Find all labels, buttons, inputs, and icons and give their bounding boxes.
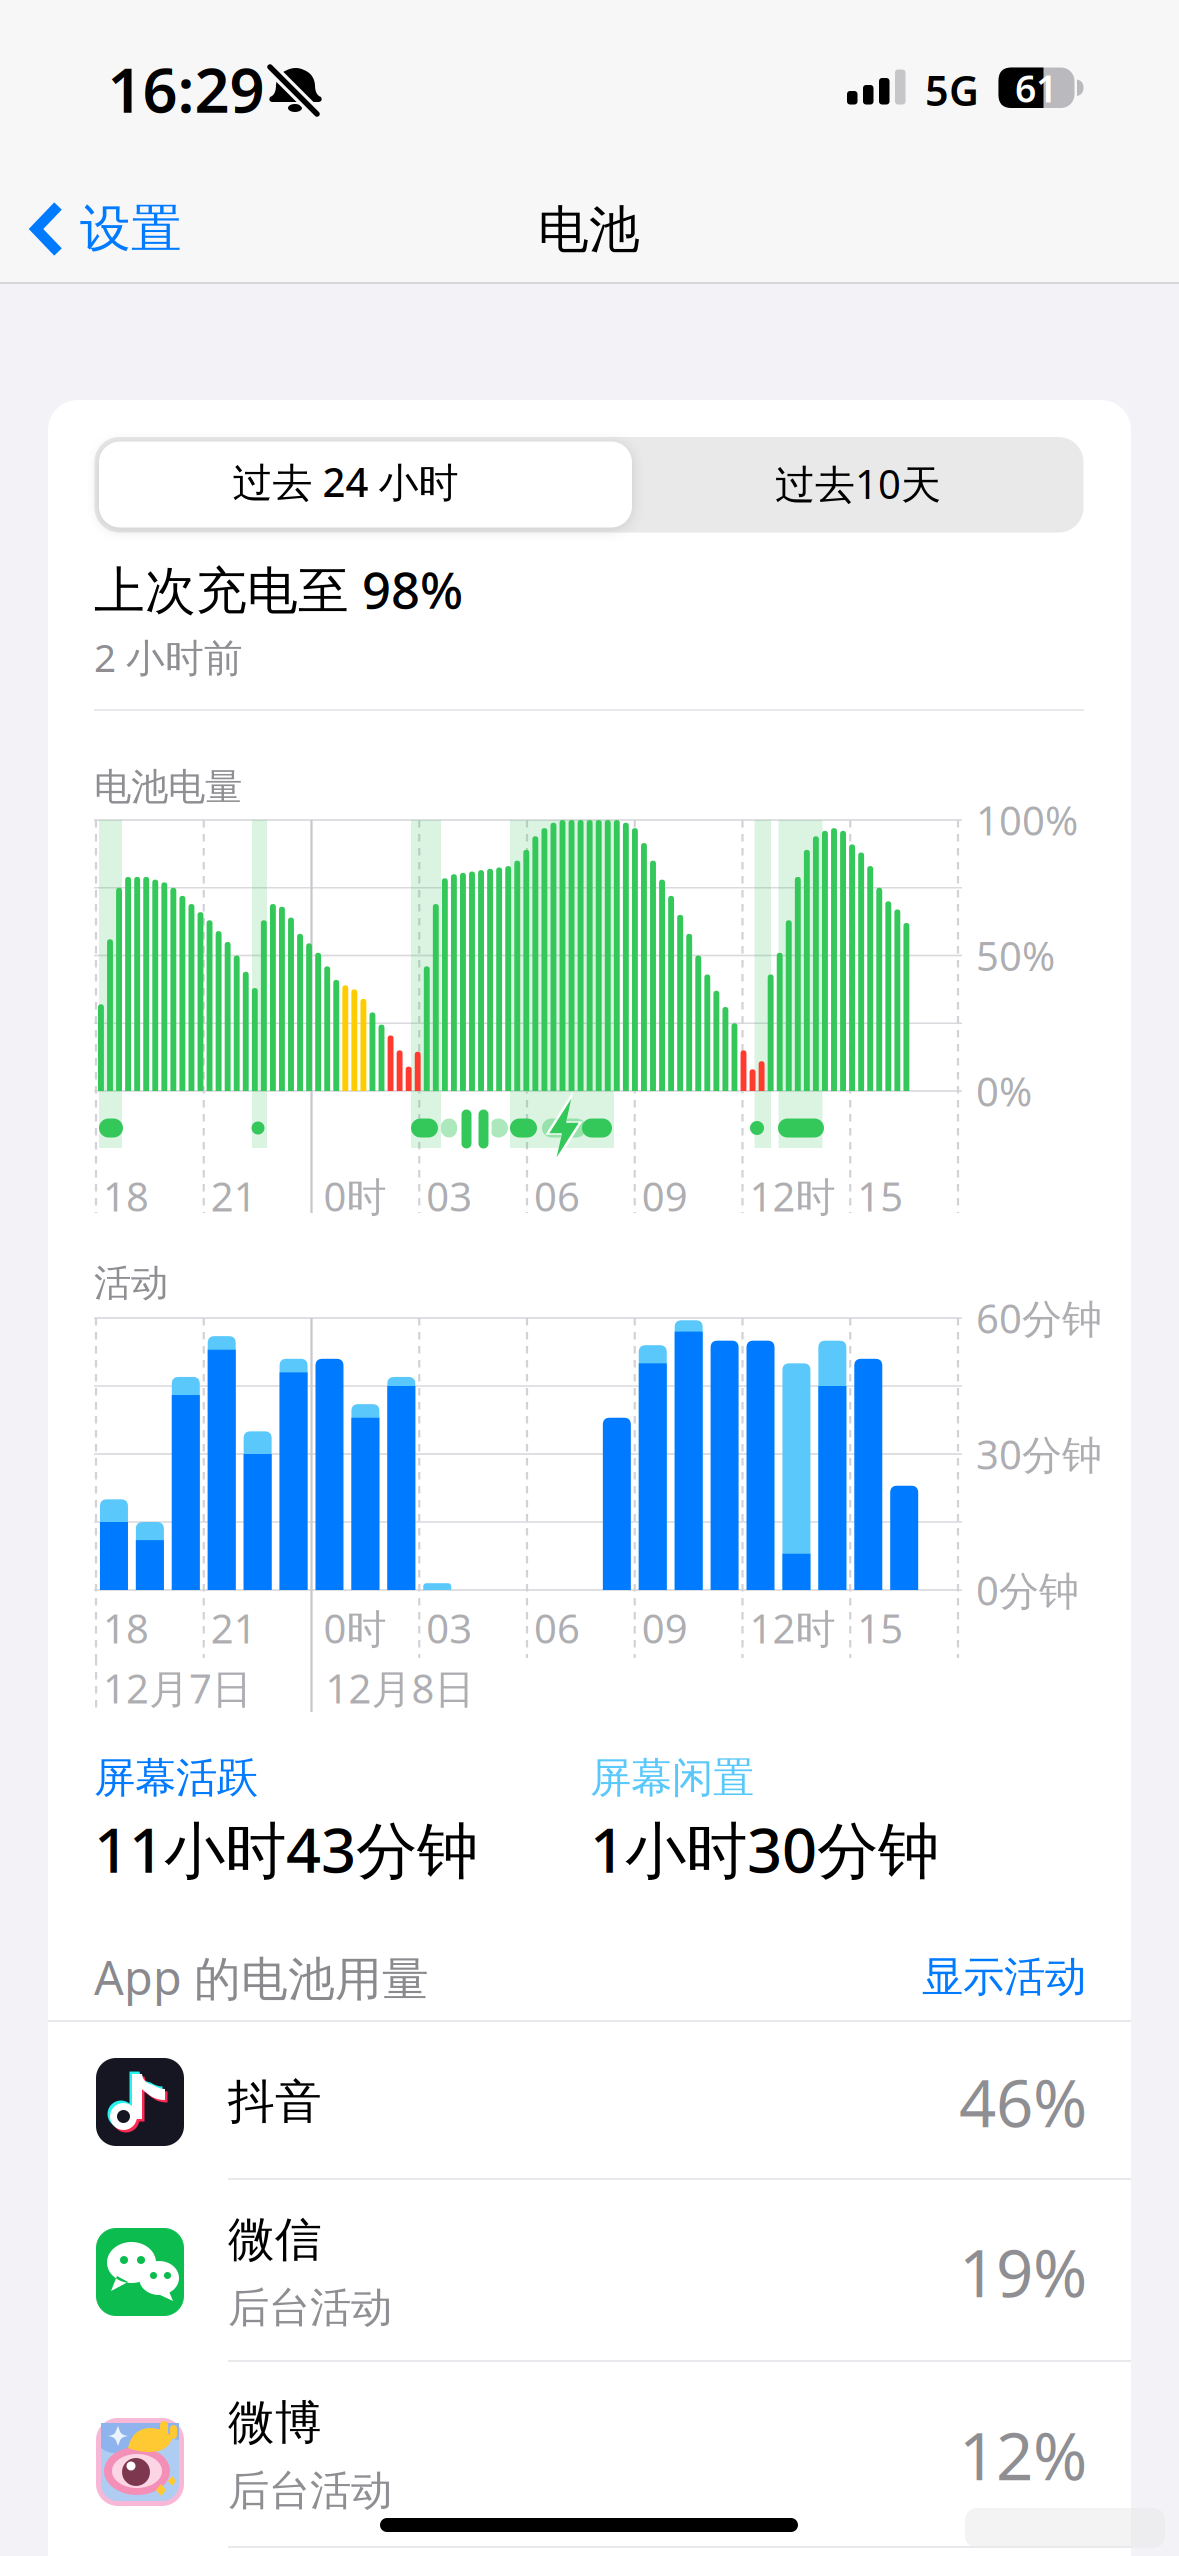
staticText: 5G xyxy=(925,63,979,117)
staticText: 屏幕闲置 xyxy=(590,1753,754,1803)
staticText: 微信 xyxy=(228,2211,322,2268)
staticText: 03 xyxy=(426,1601,472,1654)
staticText: 微博 xyxy=(228,2394,322,2451)
button[interactable]: 显示活动 xyxy=(766,1932,1086,2022)
staticText: 后台活动 xyxy=(228,2282,392,2333)
staticText: 15 xyxy=(857,1601,903,1654)
staticText: 0% xyxy=(976,1064,1032,1117)
staticText: 06 xyxy=(534,1169,580,1222)
button[interactable]: 微博 xyxy=(48,2364,1131,2546)
staticText: 06 xyxy=(534,1601,580,1654)
staticText: 2 小时前 xyxy=(94,631,243,683)
staticText: 抖音 xyxy=(228,2073,322,2131)
staticText: 61 xyxy=(1015,63,1057,113)
staticText: 显示活动 xyxy=(922,1952,1086,2002)
staticText: 12月7日 xyxy=(103,1661,252,1714)
staticText: 0时 xyxy=(323,1601,386,1654)
staticText: 0时 xyxy=(323,1169,386,1222)
button[interactable]: 过去 24 小时 xyxy=(99,441,632,527)
button[interactable]: 过去10天 xyxy=(633,440,1083,526)
staticText: 电池 xyxy=(538,199,640,261)
staticText: 21 xyxy=(211,1601,257,1654)
staticText: 后台活动 xyxy=(228,2465,392,2516)
button[interactable]: 微信 xyxy=(48,2181,1131,2363)
staticText: 15 xyxy=(857,1169,903,1222)
staticText: 12% xyxy=(959,2412,1087,2498)
staticText: 21 xyxy=(211,1169,257,1222)
staticText: App 的电池用量 xyxy=(94,1946,429,2008)
staticText: 18 xyxy=(103,1169,149,1222)
staticText: 12时 xyxy=(749,1601,835,1654)
button[interactable]: 返回设置 xyxy=(30,198,182,260)
staticText: 46% xyxy=(959,2059,1087,2145)
staticText: 100% xyxy=(976,793,1078,846)
staticText: 过去10天 xyxy=(775,457,941,510)
staticText: 30分钟 xyxy=(976,1427,1102,1480)
button[interactable]: 抖音 xyxy=(48,2024,1131,2180)
staticText: 屏幕活跃 xyxy=(94,1753,258,1803)
staticText: 50% xyxy=(976,929,1055,982)
staticText: 12时 xyxy=(749,1169,835,1222)
staticText: 1小时30分钟 xyxy=(590,1808,939,1890)
staticText: 16:29 xyxy=(107,48,264,130)
staticText: 09 xyxy=(642,1601,688,1654)
staticText: 12月8日 xyxy=(325,1661,474,1714)
staticText: 过去 24 小时 xyxy=(232,455,458,508)
staticText: 上次充电至 98% xyxy=(94,555,463,623)
staticText: 11小时43分钟 xyxy=(94,1808,478,1890)
staticText: 设置 xyxy=(80,198,182,260)
staticText: 18 xyxy=(103,1601,149,1654)
staticText: 0分钟 xyxy=(976,1563,1079,1616)
staticText: 19% xyxy=(959,2229,1087,2315)
staticText: 09 xyxy=(642,1169,688,1222)
staticText: 60分钟 xyxy=(976,1291,1102,1344)
staticText: 03 xyxy=(426,1169,472,1222)
staticText: 电池电量 xyxy=(94,764,242,810)
staticText: 活动 xyxy=(94,1260,168,1306)
